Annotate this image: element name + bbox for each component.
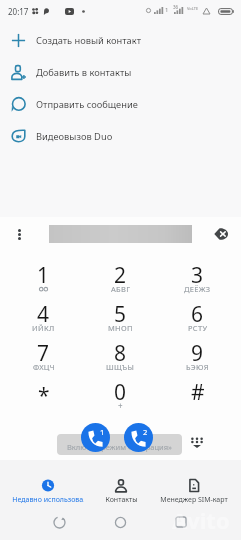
button[interactable]: Back (46, 509, 72, 535)
button[interactable]: # (159, 374, 236, 413)
button[interactable]: Hide keypad (184, 429, 210, 455)
button[interactable]: Recent apps (168, 509, 194, 535)
button[interactable]: 6 (159, 296, 236, 335)
staticText: 1 (37, 261, 50, 290)
staticText: 3 (191, 261, 204, 290)
button[interactable]: Менеджер SIM-карт (158, 473, 230, 505)
button[interactable]: Home (107, 509, 133, 535)
staticText: ШЩЪЫ (106, 362, 135, 372)
staticText: Включен режим «Вибрация» (67, 442, 172, 452)
staticText: Отправить сообщение (36, 98, 138, 111)
staticText: 6 (191, 300, 204, 329)
staticText: Avito (172, 505, 230, 535)
button[interactable]: 5 (82, 296, 159, 335)
staticText: АБВГ (111, 284, 131, 294)
button[interactable]: 8 (82, 335, 159, 374)
staticText: РСТУ (188, 323, 208, 333)
button[interactable]: 4 (5, 296, 82, 335)
button[interactable]: Call with SIM 1 (81, 423, 110, 452)
staticText: 1 (165, 6, 169, 14)
staticText: 1 (100, 427, 105, 437)
button[interactable]: 2 (82, 257, 159, 296)
button[interactable]: Видеовызов Duo (0, 120, 241, 152)
staticText: 20:17 (8, 6, 29, 17)
staticText: Недавно использова… (12, 495, 84, 505)
staticText: Создать новый контакт (36, 34, 141, 47)
staticText: 4 (37, 300, 50, 329)
button[interactable]: Добавить в контакты (0, 56, 241, 88)
button[interactable]: Call with SIM 2 (124, 423, 153, 452)
staticText: + (118, 400, 123, 411)
button[interactable]: Контакты (85, 473, 157, 505)
button[interactable]: 7 (5, 335, 82, 374)
button[interactable]: 0 (82, 374, 159, 413)
staticText: 2 (143, 427, 148, 437)
staticText: 5 (114, 300, 127, 329)
button[interactable]: * (5, 374, 82, 413)
staticText: 36 (173, 4, 179, 10)
staticText: Добавить в контакты (36, 66, 132, 79)
staticText: Видеовызов Duo (36, 130, 113, 143)
button[interactable]: 9 (159, 335, 236, 374)
staticText: 7 (37, 339, 50, 368)
staticText: * (38, 381, 50, 410)
button[interactable]: 3 (159, 257, 236, 296)
button[interactable]: Отправить сообщение (0, 88, 241, 120)
button[interactable]: Backspace (206, 219, 236, 249)
staticText: 9 (191, 339, 204, 368)
staticText: Менеджер SIM-карт (160, 495, 228, 505)
staticText: ДЕЁЖЗ (184, 284, 211, 294)
staticText: ЬЭЮЯ (186, 362, 209, 372)
staticText: 2 (114, 261, 127, 290)
staticText: МНОП (108, 323, 133, 333)
staticText: 8 (114, 339, 127, 368)
staticText: VoLTE (187, 6, 199, 11)
staticText: ИЙКЛ (32, 323, 55, 333)
button[interactable]: 1 (5, 257, 82, 296)
staticText: # (191, 378, 205, 407)
staticText: ФХЦЧ (33, 362, 55, 372)
staticText: 0 (114, 378, 127, 407)
staticText: Контакты (105, 495, 138, 505)
button[interactable]: Недавно использова… (12, 473, 84, 505)
button[interactable]: More options (4, 219, 34, 249)
button[interactable]: Создать новый контакт (0, 24, 241, 56)
